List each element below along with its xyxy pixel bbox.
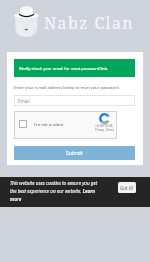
staticText: reCAPTCHA <box>95 124 113 128</box>
staticText: I'm not a robot <box>34 122 64 128</box>
button[interactable]: Email <box>14 95 135 106</box>
button[interactable]: Got it! <box>118 182 136 193</box>
staticText: Submit <box>66 150 83 157</box>
staticText: Nabz Clan <box>44 12 135 34</box>
staticText: This website uses cookies to ensure you … <box>10 180 103 202</box>
staticText: Got it! <box>120 185 134 191</box>
button[interactable]: I'm not a robot checkbox <box>19 120 27 128</box>
staticText: Email <box>18 98 30 104</box>
staticText: Kindly check your email for reset passwo… <box>19 66 109 71</box>
button[interactable]: Submit <box>14 146 135 160</box>
staticText: Enter your e-mail address below to reset… <box>14 85 119 90</box>
staticText: Privacy - Terms <box>95 128 114 132</box>
